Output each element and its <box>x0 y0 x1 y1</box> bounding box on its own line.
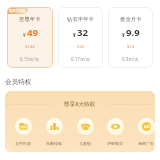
button[interactable]: 黄金月卡 <box>108 7 153 68</box>
button[interactable]: 免除广告 <box>138 118 155 135</box>
staticText: 会员特权 <box>5 78 32 86</box>
staticText: ¥ <box>23 32 26 38</box>
staticText: 批量转换 <box>46 141 62 146</box>
button[interactable]: 限时特惠 <box>7 7 53 68</box>
staticText: ¥ <box>122 32 125 38</box>
staticText: ¥72 <box>77 44 85 50</box>
staticText: 护眼模式 <box>107 141 123 146</box>
button[interactable]: 儿童锁 <box>77 118 94 135</box>
staticText: 0.3元/天 <box>122 56 139 62</box>
button[interactable]: 批量转换 <box>46 118 63 135</box>
staticText: 49 <box>27 26 38 39</box>
staticText: 文件投屏 <box>15 141 31 146</box>
staticText: 9.9 <box>126 26 140 39</box>
button[interactable]: 钻石半年卡 <box>58 7 103 68</box>
staticText: ¥144 <box>25 44 35 50</box>
staticText: 儿童锁 <box>79 141 91 146</box>
staticText: 黄金月卡 <box>120 16 142 23</box>
staticText: 0.17元/天 <box>71 56 91 62</box>
staticText: 32 <box>77 26 88 39</box>
staticText: AD <box>144 124 150 130</box>
staticText: 0.13元/天 <box>20 56 40 62</box>
staticText: 至尊年卡 <box>19 16 41 23</box>
staticText: 限时特惠 <box>9 8 26 13</box>
staticText: ¥ <box>73 32 76 38</box>
staticText: 免除广告 <box>138 141 154 146</box>
staticText: 钻石半年卡 <box>67 16 94 23</box>
button[interactable]: 护眼模式 <box>107 118 124 135</box>
staticText: ¥12 <box>127 44 135 50</box>
staticText: 尊享8大特权 <box>64 100 96 108</box>
button[interactable]: 文件投屏 <box>15 118 32 135</box>
